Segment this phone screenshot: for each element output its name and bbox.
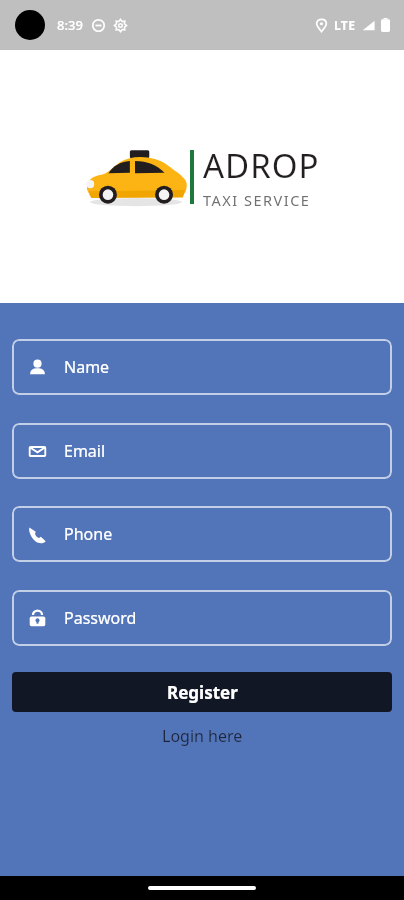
- button[interactable]: Register: [12, 672, 392, 712]
- button[interactable]: Name: [12, 339, 392, 395]
- staticText: Register: [167, 681, 238, 704]
- button[interactable]: Phone: [12, 506, 392, 562]
- staticText: Password: [64, 607, 137, 629]
- staticText: Login here: [162, 725, 243, 747]
- button[interactable]: Password: [12, 590, 392, 646]
- staticText: LTE: [334, 17, 356, 33]
- staticText: TAXI SERVICE: [203, 190, 311, 210]
- staticText: ADROP: [203, 143, 320, 188]
- staticText: Email: [64, 440, 106, 462]
- other: Email: [28, 442, 47, 461]
- staticText: 8:39: [57, 16, 83, 34]
- other: Phone: [28, 525, 47, 544]
- button[interactable]: Email: [12, 423, 392, 479]
- other: Password: [28, 609, 47, 628]
- staticText: Phone: [64, 523, 113, 545]
- staticText: Name: [64, 356, 110, 378]
- button[interactable]: Login here: [0, 725, 404, 747]
- other: Name: [28, 358, 47, 377]
